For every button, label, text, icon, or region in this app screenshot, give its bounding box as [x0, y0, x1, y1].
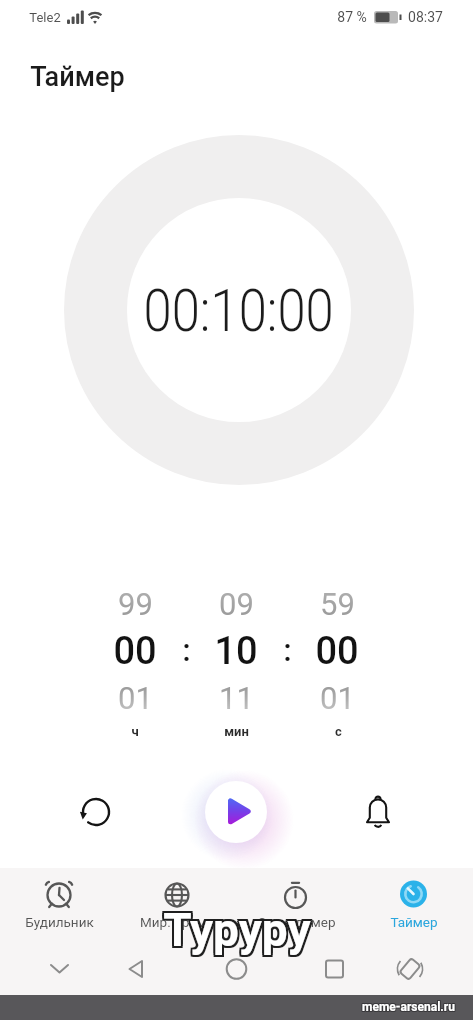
- staticText: 99: [118, 586, 153, 622]
- button[interactable]: [355, 868, 473, 946]
- staticText: meme-arsenal.ru: [362, 1001, 455, 1015]
- staticText: ч: [131, 724, 139, 739]
- staticText: 59: [320, 586, 355, 622]
- button[interactable]: [200, 947, 270, 991]
- staticText: 00: [113, 629, 157, 674]
- staticText: 01: [118, 680, 153, 716]
- button[interactable]: [24, 947, 94, 991]
- staticText: с: [335, 724, 342, 739]
- staticText: meme-arsenal.ru: [363, 999, 456, 1013]
- staticText: Туруру: [163, 903, 311, 957]
- staticText: 10: [214, 629, 258, 674]
- staticText: :: [182, 631, 191, 669]
- staticText: 01: [320, 680, 355, 716]
- button[interactable]: [376, 947, 446, 991]
- staticText: 87 %: [337, 9, 367, 25]
- staticText: meme-arsenal.ru: [363, 1000, 456, 1014]
- staticText: 00:10:00: [143, 276, 334, 345]
- staticText: :: [283, 631, 292, 669]
- staticText: meme-arsenal.ru: [362, 1000, 455, 1014]
- button[interactable]: [72, 788, 120, 836]
- staticText: meme-arsenal.ru: [361, 1001, 454, 1015]
- staticText: 00: [315, 629, 359, 674]
- button[interactable]: [205, 781, 267, 843]
- staticText: Таймер: [30, 61, 125, 93]
- staticText: Туруру: [163, 901, 311, 955]
- staticText: Таймер: [390, 914, 438, 930]
- staticText: meme-arsenal.ru: [363, 1001, 456, 1015]
- staticText: Будильник: [25, 914, 94, 930]
- staticText: 11: [219, 680, 254, 716]
- staticText: Туруру: [165, 903, 313, 957]
- staticText: Туруру: [165, 901, 313, 955]
- staticText: Туруру: [161, 901, 309, 955]
- staticText: Секундомер: [257, 914, 336, 930]
- staticText: Туруру: [161, 903, 309, 957]
- button[interactable]: [118, 868, 236, 946]
- button[interactable]: [0, 868, 118, 946]
- staticText: Мир. время: [140, 914, 214, 930]
- staticText: Туруру: [163, 905, 311, 959]
- staticText: meme-arsenal.ru: [362, 999, 455, 1013]
- staticText: мин: [224, 724, 249, 739]
- button[interactable]: [112, 947, 182, 991]
- staticText: meme-arsenal.ru: [361, 999, 454, 1013]
- staticText: Туруру: [165, 905, 313, 959]
- staticText: 09: [219, 586, 254, 622]
- staticText: Tele2: [29, 10, 61, 25]
- staticText: meme-arsenal.ru: [361, 1000, 454, 1014]
- button[interactable]: [354, 787, 402, 835]
- button[interactable]: [237, 868, 355, 946]
- staticText: Туруру: [161, 905, 309, 959]
- button[interactable]: [288, 947, 358, 991]
- staticText: 08:37: [408, 9, 443, 25]
